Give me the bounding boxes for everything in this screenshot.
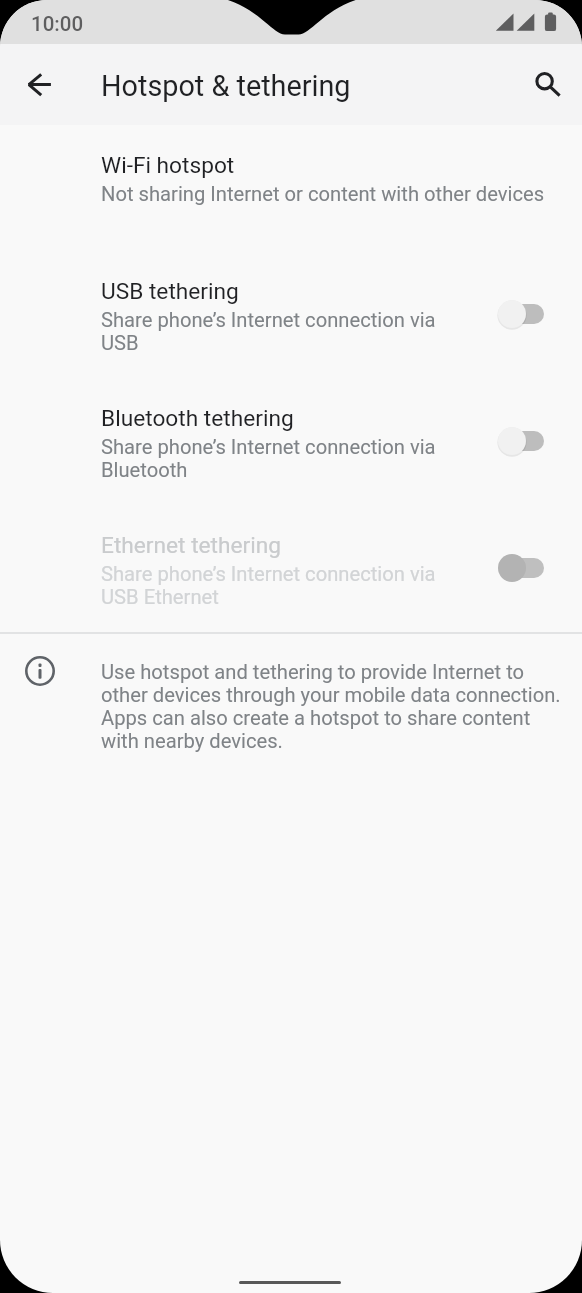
button[interactable]: Search	[521, 61, 569, 109]
button[interactable]: Back	[18, 61, 66, 109]
button[interactable]: Wi-Fi hotspot	[0, 126, 582, 253]
staticText: 10:00	[31, 12, 84, 36]
staticText: Not sharing Internet or content with oth…	[101, 182, 545, 206]
staticText: Share phone’s Internet connection via US…	[101, 562, 451, 609]
staticText: Bluetooth tethering	[101, 405, 294, 432]
button[interactable]: Ethernet tethering	[0, 506, 582, 633]
staticText: Ethernet tethering	[101, 532, 282, 559]
staticText: Share phone’s Internet connection via Bl…	[101, 435, 451, 482]
button[interactable]: USB tethering	[0, 252, 582, 379]
staticText: Share phone’s Internet connection via US…	[101, 308, 451, 355]
staticText: Hotspot & tethering	[101, 69, 351, 103]
button[interactable]: Bluetooth tethering	[0, 379, 582, 506]
button[interactable]: Toggle	[494, 297, 550, 331]
button[interactable]: Toggle	[494, 424, 550, 458]
staticText: USB tethering	[101, 278, 239, 305]
staticText: Wi-Fi hotspot	[101, 152, 235, 179]
staticText: Use hotspot and tethering to provide Int…	[101, 660, 563, 753]
button[interactable]: Toggle	[494, 551, 550, 585]
